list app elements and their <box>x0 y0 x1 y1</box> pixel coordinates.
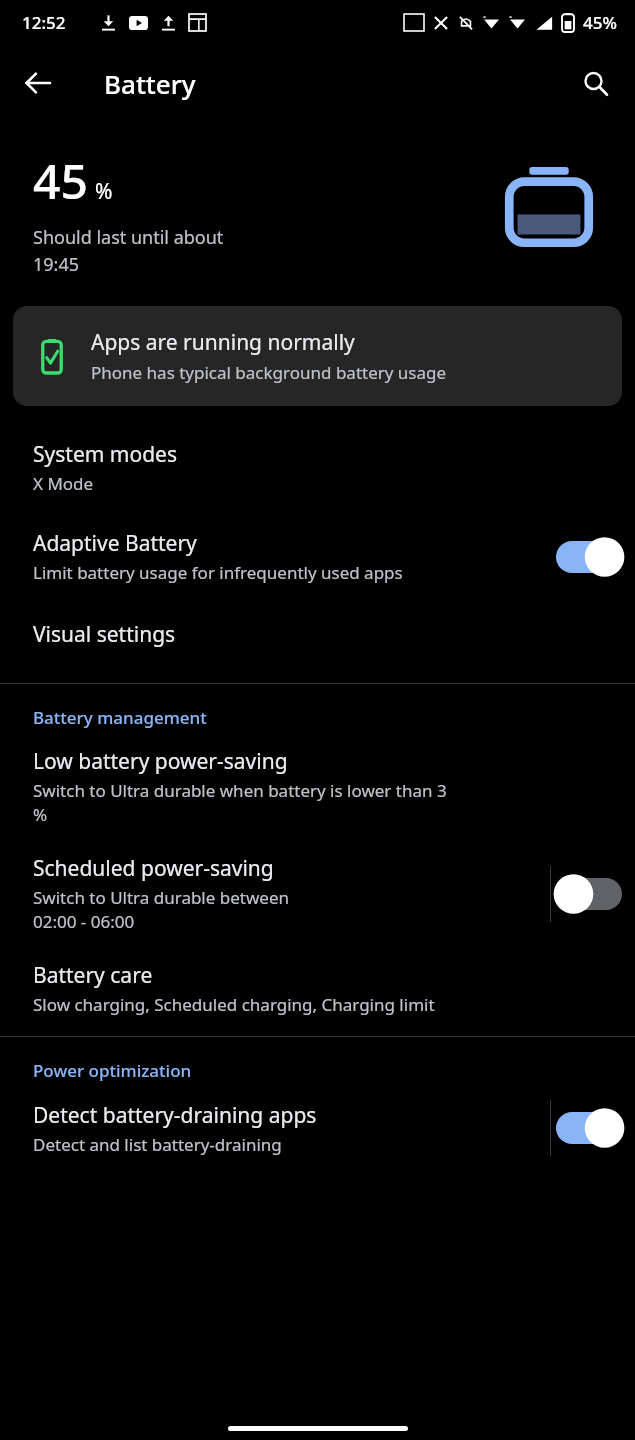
staticText: Phone has typical background battery usa… <box>91 361 447 384</box>
staticText: Switch to Ultra durable between 02:00 - … <box>33 886 289 933</box>
staticText: Apps are running normally <box>91 328 355 357</box>
button[interactable]: Battery care <box>0 947 635 1036</box>
button[interactable]: Visual settings <box>0 600 635 669</box>
button[interactable] <box>551 532 627 582</box>
staticText: Battery care <box>33 961 153 990</box>
staticText: Power optimization <box>33 1059 192 1082</box>
staticText: Low battery power-saving <box>33 747 288 776</box>
staticText: Switch to Ultra durable when battery is … <box>33 779 447 826</box>
staticText: 12:52 <box>22 11 66 34</box>
staticText: Detect battery-draining apps <box>33 1101 317 1130</box>
button[interactable]: System modes <box>0 432 635 513</box>
staticText: X Mode <box>33 472 94 495</box>
button[interactable] <box>551 869 627 919</box>
staticText: Adaptive Battery <box>33 529 197 558</box>
staticText: Battery management <box>33 706 207 729</box>
button[interactable]: Scheduled power-saving <box>0 840 635 947</box>
button[interactable]: Detect battery-draining apps <box>0 1088 635 1156</box>
button[interactable]: Adaptive Battery <box>0 513 635 600</box>
button[interactable]: Apps are running normally <box>13 306 622 406</box>
button[interactable]: Back <box>10 55 66 111</box>
staticText: Scheduled power-saving <box>33 854 274 883</box>
staticText: Limit battery usage for infrequently use… <box>33 561 403 584</box>
staticText: Battery <box>104 66 196 101</box>
staticText: 45% <box>583 11 617 34</box>
staticText: Should last until about 19:45 <box>33 225 224 276</box>
button[interactable]: Low battery power-saving <box>0 735 635 840</box>
button[interactable] <box>551 1103 627 1153</box>
staticText: Slow charging, Scheduled charging, Charg… <box>33 993 435 1016</box>
staticText: System modes <box>33 440 177 469</box>
staticText: % <box>95 177 113 206</box>
staticText: 45 <box>33 148 88 213</box>
staticText: Detect and list battery-draining <box>33 1133 282 1156</box>
staticText: Visual settings <box>33 620 176 649</box>
button[interactable]: Search <box>567 55 623 111</box>
